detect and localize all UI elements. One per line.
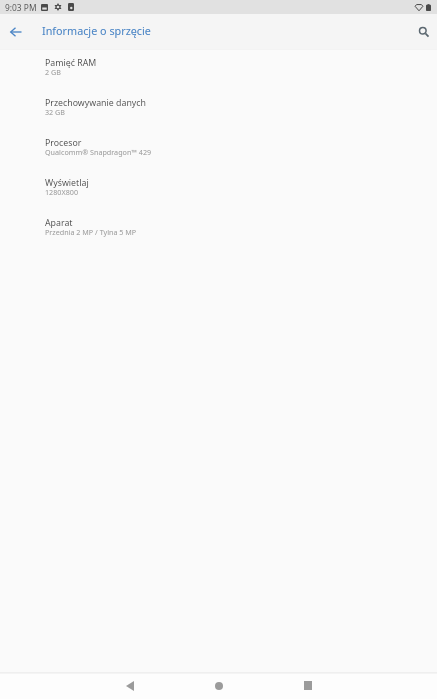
- staticText: Przechowywanie danych: [45, 97, 146, 109]
- staticText: 2 GB: [45, 67, 61, 77]
- staticText: 9:03 PM: [5, 2, 37, 13]
- button[interactable]: Aparat: [0, 211, 437, 251]
- staticText: Wyświetlaj: [45, 177, 89, 189]
- button[interactable]: Przechowywanie danych: [0, 91, 437, 131]
- button[interactable]: Pamięć RAM: [0, 51, 437, 91]
- staticText: 1280X800: [45, 187, 78, 197]
- staticText: Aparat: [45, 217, 73, 229]
- button[interactable]: Procesor: [0, 131, 437, 171]
- staticText: Qualcomm® Snapdragon™ 429: [45, 147, 152, 157]
- button[interactable]: Wyświetlaj: [0, 171, 437, 211]
- button[interactable]: Home: [200, 674, 237, 699]
- button[interactable]: Back: [0, 14, 31, 49]
- staticText: Przednia 2 MP / Tylna 5 MP: [45, 227, 137, 237]
- button[interactable]: Back: [111, 674, 148, 699]
- button[interactable]: Recent apps: [289, 674, 326, 699]
- button[interactable]: Search: [410, 14, 437, 49]
- staticText: Informacje o sprzęcie: [42, 23, 151, 38]
- staticText: Procesor: [45, 137, 82, 149]
- staticText: 32 GB: [45, 107, 65, 117]
- staticText: Pamięć RAM: [45, 57, 97, 69]
